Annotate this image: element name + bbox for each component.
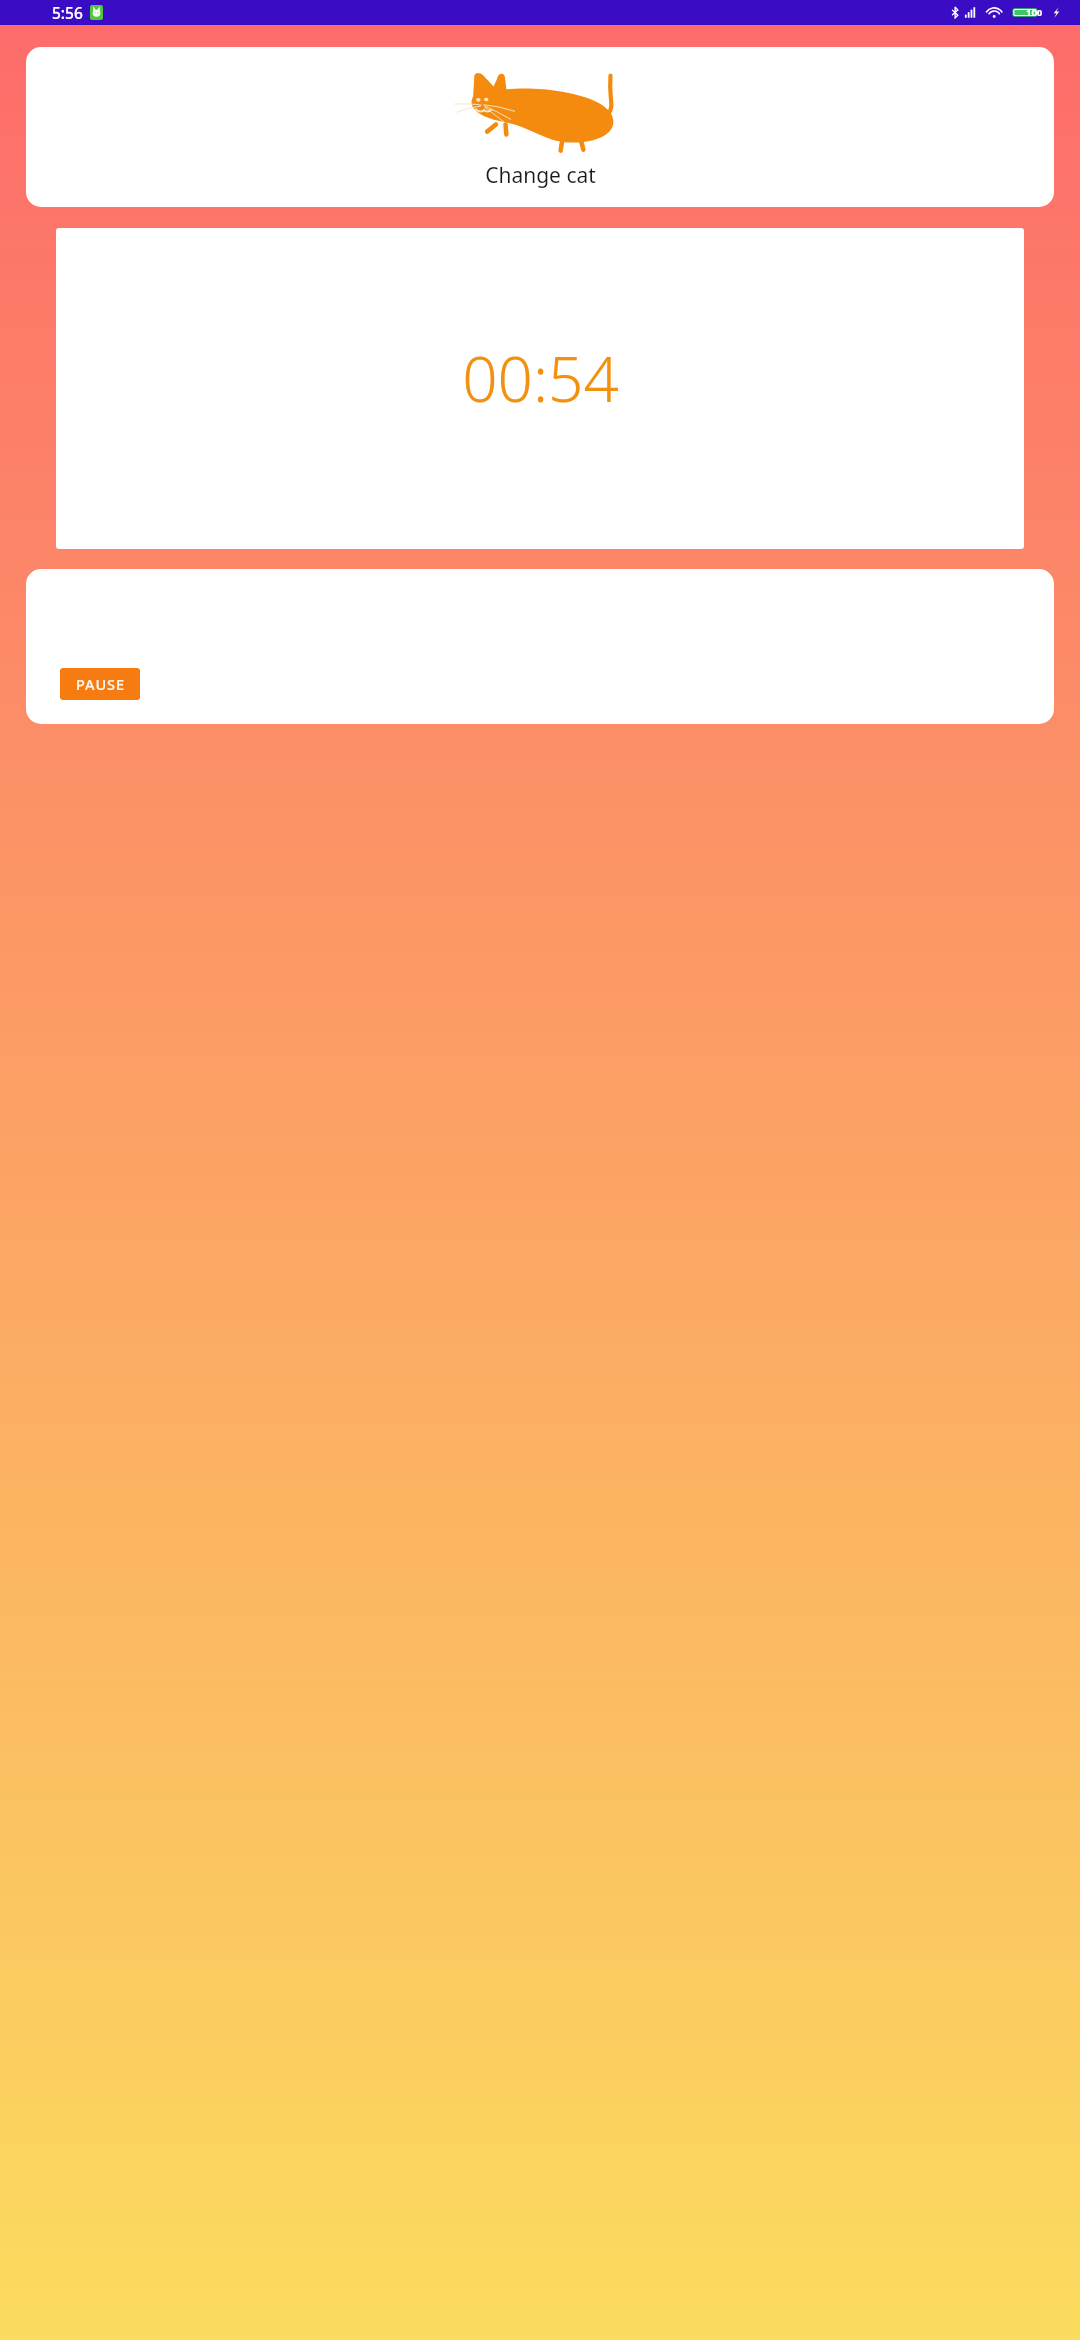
button[interactable]: Pause timer <box>60 668 140 700</box>
staticText: 00:54 <box>462 336 619 420</box>
staticText: Change cat <box>485 161 596 190</box>
staticText: 5:56 <box>52 2 83 23</box>
button[interactable]: Change cat <box>26 47 1054 207</box>
staticText: PAUSE <box>76 674 125 694</box>
staticText: 100 <box>1026 6 1043 19</box>
